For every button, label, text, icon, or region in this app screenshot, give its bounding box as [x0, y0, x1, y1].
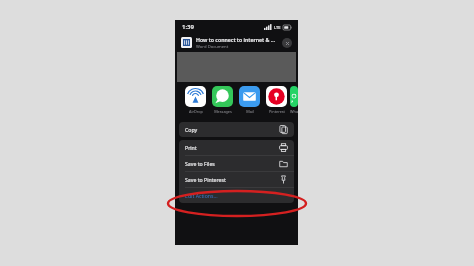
- staticText: Mail: [246, 109, 254, 114]
- staticText: WhatsApp: [290, 109, 298, 114]
- staticText: AirDrop: [189, 109, 203, 114]
- staticText: Print: [185, 144, 279, 151]
- button[interactable]: Pinterest: [263, 86, 290, 114]
- button[interactable]: Close: [282, 38, 292, 48]
- staticText: Edit Actions...: [185, 192, 218, 199]
- staticText: How to connect to internet & wi-fi (fina…: [196, 36, 279, 43]
- button[interactable]: Copy: [179, 122, 294, 137]
- button[interactable]: How to connect to internet & wi-fi (fina…: [175, 33, 298, 52]
- staticText: Pinterest: [269, 109, 285, 114]
- button[interactable]: WhatsApp: [290, 86, 298, 114]
- staticText: Save to Pinterest: [185, 176, 279, 183]
- staticText: Word Document: [196, 44, 229, 50]
- button[interactable]: Print: [179, 140, 294, 155]
- staticText: Save to Files: [185, 160, 279, 167]
- button[interactable]: AirDrop: [182, 86, 209, 114]
- button[interactable]: Save to Files: [179, 156, 294, 171]
- button[interactable]: Save to Pinterest: [179, 172, 294, 187]
- staticText: 1:39: [182, 23, 194, 31]
- button[interactable]: Mail: [236, 86, 263, 114]
- staticText: Copy: [185, 126, 279, 133]
- staticText: Messages: [214, 109, 232, 114]
- staticText: LTE: [274, 25, 281, 30]
- button[interactable]: Edit Actions...: [179, 188, 294, 203]
- button[interactable]: Messages: [209, 86, 236, 114]
